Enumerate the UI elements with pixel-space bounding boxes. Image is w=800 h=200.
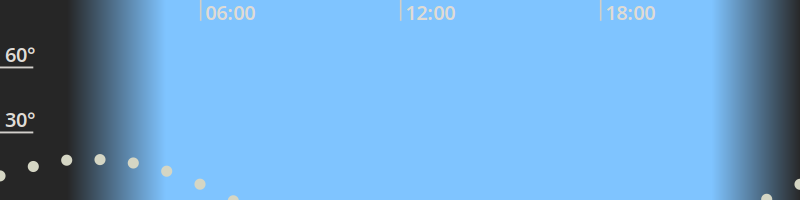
staticText: 60° — [5, 41, 36, 68]
staticText: 12:00 — [405, 0, 455, 26]
staticText: 18:00 — [605, 0, 655, 26]
staticText: 30° — [5, 106, 36, 133]
staticText: 06:00 — [205, 0, 255, 26]
